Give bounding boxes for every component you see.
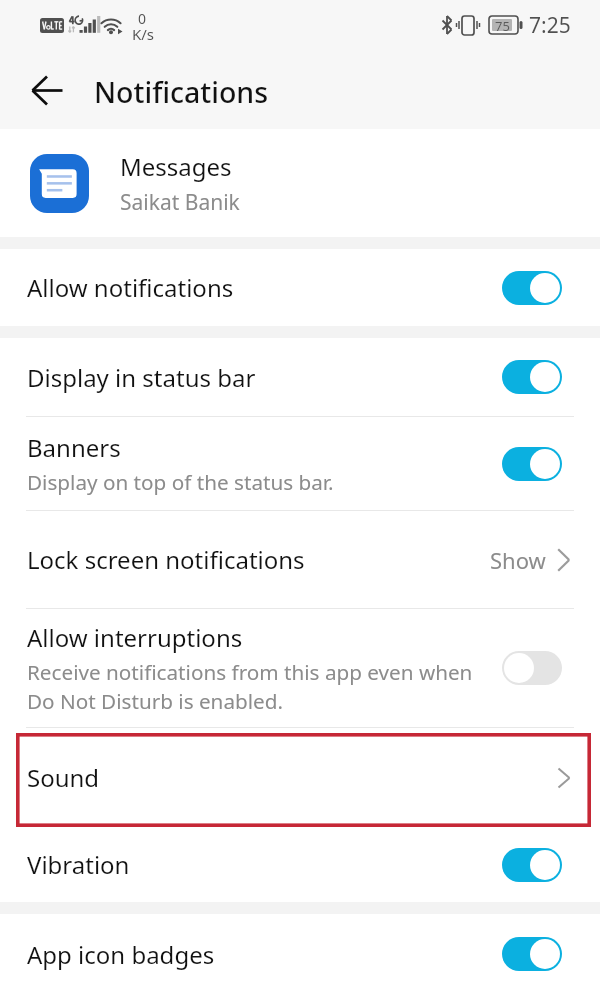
button[interactable]: Allow interruptions toggle: [502, 651, 562, 685]
button[interactable]: Display in status bar toggle: [502, 360, 562, 394]
staticText: Messages: [120, 150, 232, 183]
staticText: Display in status bar: [27, 361, 256, 394]
button[interactable]: Display in status bar: [0, 338, 600, 416]
staticText: Display on top of the status bar.: [27, 468, 334, 496]
staticText: Vibration: [27, 848, 130, 881]
staticText: Allow interruptions: [27, 621, 243, 654]
button[interactable]: Allow interruptions: [0, 609, 600, 727]
staticText: 75: [495, 17, 510, 35]
button[interactable]: App icon badges: [0, 914, 600, 994]
staticText: App icon badges: [27, 938, 215, 971]
button[interactable]: Allow notifications toggle: [502, 271, 562, 305]
staticText: Lock screen notifications: [27, 543, 490, 576]
staticText: Show: [490, 545, 546, 575]
staticText: Saikat Banik: [120, 188, 240, 217]
staticText: Allow notifications: [27, 271, 234, 304]
button[interactable]: Allow notifications: [0, 249, 600, 326]
button[interactable]: Vibration toggle: [502, 848, 562, 882]
staticText: Sound: [27, 761, 557, 794]
button[interactable]: Sound: [0, 728, 600, 827]
button[interactable]: App icon badges toggle: [502, 937, 562, 971]
staticText: Receive notifications from this app even…: [27, 658, 473, 715]
staticText: Banners: [27, 431, 121, 464]
button[interactable]: Back: [23, 66, 71, 114]
staticText: 0: [138, 9, 147, 28]
staticText: K/s: [132, 24, 155, 44]
button[interactable]: Vibration: [0, 827, 600, 902]
button[interactable]: Lock screen notifications: [0, 511, 600, 608]
button[interactable]: Banners: [0, 417, 600, 510]
button[interactable]: Banners toggle: [502, 447, 562, 481]
button[interactable]: Messages: [0, 129, 600, 237]
staticText: 7:25: [529, 11, 571, 40]
staticText: Notifications: [94, 73, 269, 112]
